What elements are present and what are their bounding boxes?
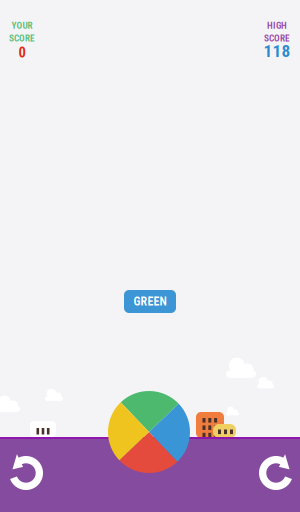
staticText: GREEN xyxy=(133,294,166,309)
button[interactable]: Rotate left xyxy=(0,445,54,501)
staticText: 118 xyxy=(263,41,290,61)
button[interactable]: GREEN xyxy=(124,290,176,313)
button[interactable]: Rotate right xyxy=(248,445,300,501)
staticText: SCORE xyxy=(264,33,290,44)
staticText: SCORE xyxy=(9,33,35,44)
staticText: HIGH xyxy=(267,20,287,31)
staticText: YOUR xyxy=(11,20,32,31)
staticText: 0 xyxy=(18,44,25,61)
